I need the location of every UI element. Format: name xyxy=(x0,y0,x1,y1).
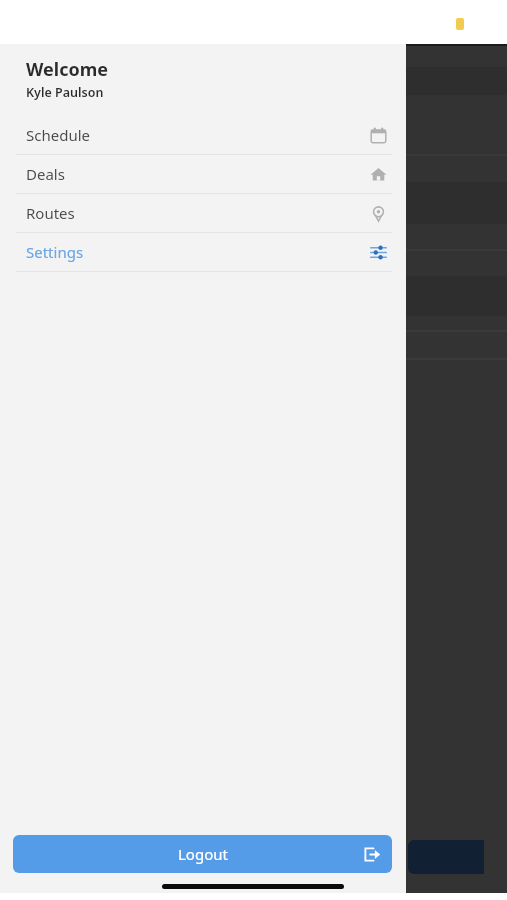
staticText: Deals xyxy=(26,164,65,184)
staticText: Welcome xyxy=(26,57,108,82)
staticText: Settings xyxy=(26,242,84,262)
staticText: Kyle Paulson xyxy=(26,84,104,101)
other: Logout xyxy=(363,846,380,863)
staticText: Logout xyxy=(178,844,228,864)
staticText: Routes xyxy=(26,203,75,223)
button[interactable]: Settings xyxy=(0,233,406,271)
button[interactable]: Logout xyxy=(13,835,392,873)
button[interactable]: Deals xyxy=(0,155,406,193)
button[interactable]: Schedule xyxy=(0,116,406,154)
staticText: Schedule xyxy=(26,125,90,145)
button[interactable]: Routes xyxy=(0,194,406,232)
